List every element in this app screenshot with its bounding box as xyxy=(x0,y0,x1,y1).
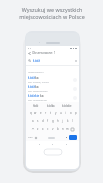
staticText: p xyxy=(75,111,77,115)
staticText: z xyxy=(37,127,39,131)
staticText: q xyxy=(30,111,32,115)
button[interactable]: z xyxy=(35,126,40,132)
staticText: Łódź xyxy=(33,59,40,63)
button[interactable]: Łódzkie xyxy=(28,93,77,102)
staticText: c xyxy=(47,127,49,131)
staticText: n xyxy=(62,127,64,131)
button[interactable]: p xyxy=(73,110,78,116)
button[interactable]: h xyxy=(55,118,60,124)
button[interactable]: m xyxy=(65,126,70,132)
button[interactable]: t xyxy=(48,110,53,116)
button[interactable]: w xyxy=(33,110,38,116)
staticText: Łódź xyxy=(28,85,35,89)
staticText: ?123 xyxy=(28,136,33,139)
staticText: ka xyxy=(40,94,44,98)
button[interactable]: o xyxy=(68,110,73,116)
button[interactable]: Period xyxy=(64,135,68,140)
button[interactable]: y xyxy=(53,110,58,116)
button[interactable]: Łódzkie xyxy=(62,104,72,108)
button[interactable]: łódź xyxy=(33,104,39,108)
staticText: d xyxy=(42,119,44,123)
staticText: woj. wielkopolskie xyxy=(28,90,48,93)
button[interactable]: u xyxy=(58,110,63,116)
staticText: u xyxy=(60,111,62,115)
staticText: e xyxy=(40,111,42,115)
staticText: j xyxy=(62,119,63,123)
staticText: ka xyxy=(35,85,39,89)
staticText: woj. mazowieckie xyxy=(28,99,47,102)
staticText: o xyxy=(70,111,72,115)
staticText: Łódzkie xyxy=(28,94,40,98)
button[interactable]: g xyxy=(50,118,55,124)
button[interactable]: Obserwowane: 1 xyxy=(28,50,77,56)
staticText: b xyxy=(57,127,59,131)
button[interactable]: i xyxy=(63,110,68,116)
staticText: f xyxy=(47,119,48,123)
staticText: g xyxy=(52,119,54,123)
button[interactable]: s xyxy=(35,118,40,124)
staticText: k xyxy=(67,119,69,123)
staticText: m xyxy=(66,127,69,131)
staticText: w xyxy=(34,111,37,115)
button[interactable]: Emoji xyxy=(34,135,38,140)
staticText: x xyxy=(42,127,44,131)
button[interactable]: x xyxy=(40,126,45,132)
button[interactable]: Łódź xyxy=(28,56,77,65)
staticText: Wyszukuj we wszystkich miejscowościach w… xyxy=(19,6,85,20)
staticText: s xyxy=(37,119,39,123)
staticText: Miejscowości xyxy=(28,70,44,73)
button[interactable]: l xyxy=(70,118,75,124)
staticText: łódź xyxy=(33,104,39,108)
staticText: Łódź xyxy=(28,76,35,80)
button[interactable]: d xyxy=(40,118,45,124)
button[interactable]: e xyxy=(38,110,43,116)
button[interactable]: c xyxy=(45,126,50,132)
button[interactable]: b xyxy=(55,126,60,132)
staticText: y xyxy=(55,111,57,115)
staticText: a xyxy=(32,119,34,123)
button[interactable]: Clear search xyxy=(74,59,77,62)
button[interactable]: a xyxy=(30,118,35,124)
staticText: Łódzkie xyxy=(62,104,72,108)
staticText: ka xyxy=(35,76,39,80)
staticText: woj. łódzkie, Polska xyxy=(28,81,49,84)
staticText: h xyxy=(57,119,59,123)
button[interactable]: j xyxy=(60,118,65,124)
button[interactable]: r xyxy=(43,110,48,116)
button[interactable]: v xyxy=(50,126,55,132)
staticText: Obserwowane: 1 xyxy=(32,51,56,55)
button[interactable]: f xyxy=(45,118,50,124)
button[interactable]: n xyxy=(60,126,65,132)
button[interactable]: Search xyxy=(69,135,77,140)
staticText: r xyxy=(45,111,47,115)
button[interactable]: Łódka xyxy=(47,104,55,108)
button[interactable]: Łódź xyxy=(28,75,77,84)
button[interactable]: Space xyxy=(39,135,63,140)
staticText: l xyxy=(72,119,73,123)
button[interactable]: Symbols xyxy=(28,135,33,140)
button[interactable]: Backspace xyxy=(70,126,75,132)
staticText: t xyxy=(50,111,52,115)
button[interactable]: Shift xyxy=(30,126,35,132)
button[interactable]: k xyxy=(65,118,70,124)
staticText: i xyxy=(65,111,66,115)
staticText: Łódka xyxy=(47,104,55,108)
staticText: v xyxy=(52,127,54,131)
button[interactable]: Łódź xyxy=(28,84,77,93)
button[interactable]: q xyxy=(28,110,33,116)
